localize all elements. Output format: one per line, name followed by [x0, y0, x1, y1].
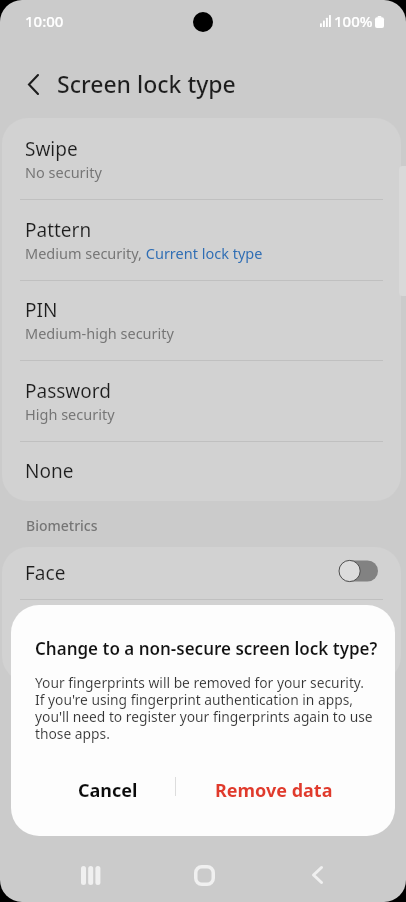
staticText: Password — [25, 378, 111, 404]
staticText: Pattern — [25, 217, 92, 243]
button[interactable]: Home — [180, 848, 228, 902]
button[interactable]: None — [2, 441, 401, 501]
staticText: PIN — [25, 297, 58, 323]
button[interactable]: Pattern — [2, 199, 401, 280]
staticText: None — [25, 458, 74, 484]
staticText: Medium-high security — [25, 323, 174, 343]
staticText: Swipe — [25, 136, 78, 162]
button[interactable]: Face toggle, off — [336, 558, 378, 584]
button[interactable]: PIN — [2, 280, 401, 360]
staticText: Your fingerprints will be removed for yo… — [35, 673, 375, 743]
button[interactable]: Cancel — [24, 762, 191, 818]
staticText: Change to a non-secure screen lock type? — [35, 637, 378, 660]
staticText: No security — [25, 162, 102, 182]
staticText: Face — [25, 560, 66, 586]
staticText: High security — [25, 404, 115, 424]
staticText: 10:00 — [25, 11, 64, 31]
button[interactable]: Back — [293, 848, 341, 902]
staticText: Remove data — [215, 778, 333, 803]
button[interactable]: Password — [2, 360, 401, 441]
button[interactable]: Remove data — [164, 762, 384, 818]
button[interactable]: Face — [2, 547, 401, 599]
staticText: Medium security, Current lock type — [25, 243, 263, 263]
button[interactable]: Swipe — [2, 118, 401, 199]
staticText: Biometrics — [26, 516, 98, 535]
staticText: Cancel — [78, 778, 138, 803]
staticText: 100% — [334, 11, 373, 27]
staticText: Screen lock type — [57, 68, 236, 99]
button[interactable]: Navigate up — [14, 65, 52, 103]
button[interactable]: Recent apps — [66, 848, 114, 902]
